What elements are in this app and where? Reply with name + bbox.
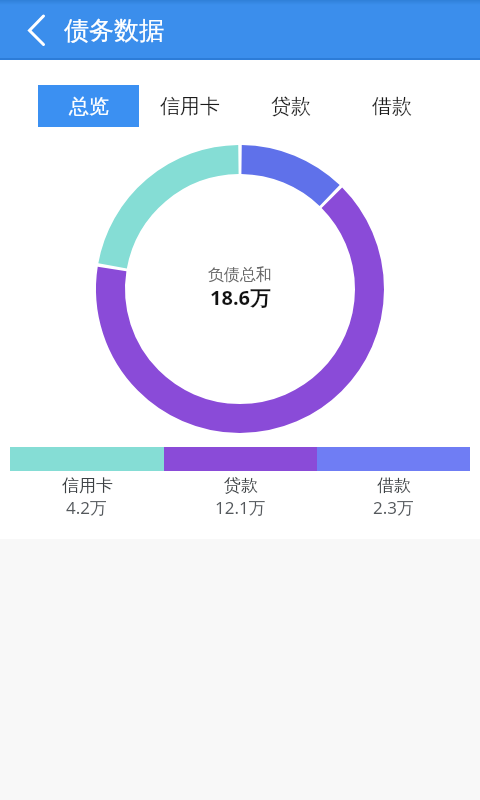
staticText: 信用卡 [160,94,220,119]
button[interactable]: 总览 [38,85,139,127]
staticText: 信用卡 [62,475,113,496]
staticText: 总览 [69,94,109,119]
staticText: 12.1万 [215,496,266,519]
button[interactable]: 信用卡 [139,85,240,127]
staticText: 负债总和 [208,265,272,285]
staticText: 2.3万 [373,496,415,519]
staticText: 借款 [377,475,411,496]
button[interactable]: 借款 [341,85,442,127]
button[interactable]: 贷款 [240,85,341,127]
staticText: 债务数据 [64,15,164,46]
button[interactable]: 债务数据 [0,0,164,60]
staticText: 贷款 [224,475,258,496]
staticText: 借款 [372,94,412,119]
staticText: 贷款 [271,94,311,119]
staticText: 18.6万 [210,284,270,311]
staticText: 4.2万 [66,496,108,519]
